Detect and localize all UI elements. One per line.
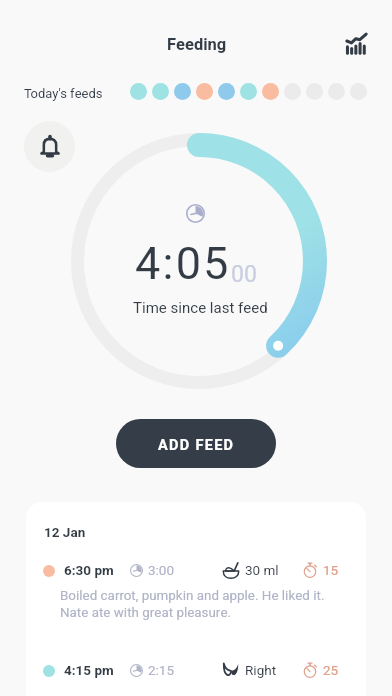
staticText: Boiled carrot, pumpkin and apple. He lik… [60,586,325,623]
staticText: Feeding [167,33,227,57]
staticText: 3:00 [148,561,175,581]
staticText: 15 [323,561,339,581]
button[interactable]: Reminders [24,121,75,172]
staticText: 4:05 [135,232,231,298]
button[interactable]: Statistics [338,25,374,61]
button[interactable]: ADD FEED [116,419,276,468]
button[interactable]: 4:15 pm [40,656,352,684]
staticText: ADD FEED [158,435,235,456]
staticText: 30 ml [245,561,279,581]
button[interactable]: 6:30 pm [40,556,352,584]
staticText: Time since last feed [133,297,268,319]
staticText: 6:30 pm [64,561,114,581]
staticText: 00 [231,258,257,292]
staticText: Right [245,661,277,681]
staticText: 4:15 pm [64,661,114,681]
staticText: 25 [323,661,339,681]
staticText: Today's feeds [24,84,103,103]
staticText: 12 Jan [44,523,86,543]
staticText: 2:15 [148,661,175,681]
